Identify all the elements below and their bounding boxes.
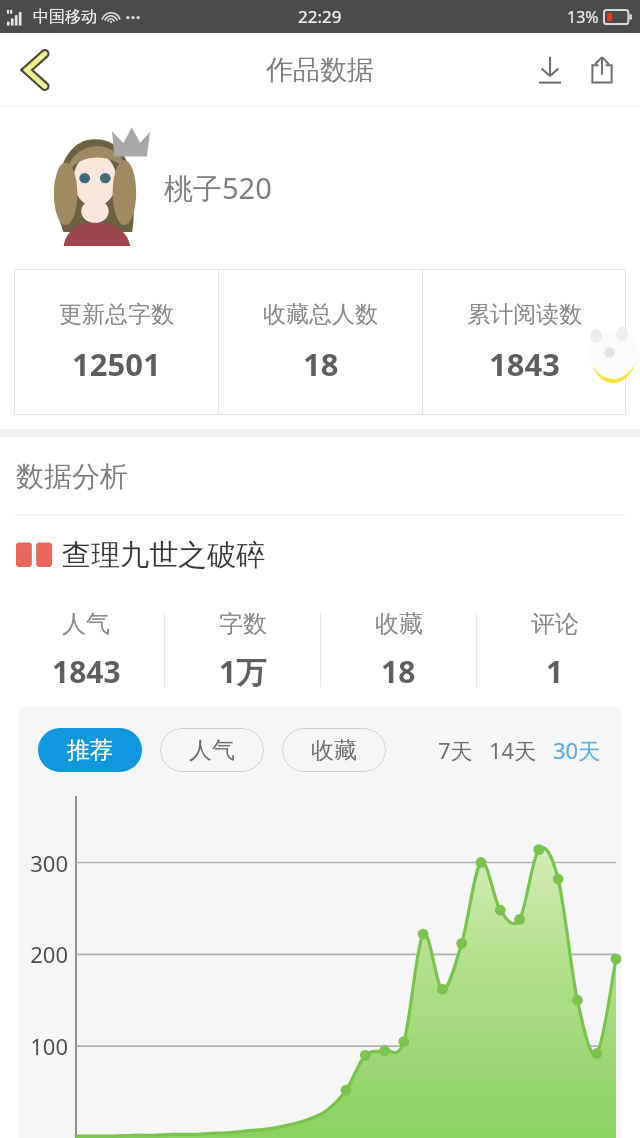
staticText: 数据分析 — [16, 459, 128, 494]
staticText: 1843 — [52, 651, 121, 692]
button[interactable]: 30天 — [550, 729, 604, 771]
button[interactable]: 7天 — [435, 729, 476, 771]
staticText: 200 — [20, 939, 68, 969]
staticText: 人气 — [62, 609, 110, 639]
button[interactable]: 字数 — [165, 609, 320, 692]
button[interactable]: 收藏 — [321, 609, 476, 692]
staticText: 12501 — [72, 343, 161, 385]
staticText: 作品数据 — [266, 53, 374, 87]
button[interactable]: Download — [524, 44, 576, 96]
button[interactable]: 14天 — [486, 729, 540, 771]
staticText: 22:29 — [298, 5, 342, 28]
button[interactable]: 累计阅读数 — [423, 269, 626, 415]
staticText: 字数 — [219, 609, 267, 639]
staticText: 评论 — [531, 609, 579, 639]
staticText: 13% — [567, 6, 599, 28]
staticText: 桃子520 — [164, 168, 272, 208]
staticText: 收藏 — [311, 736, 357, 765]
button[interactable]: 桃子520 — [0, 107, 640, 269]
staticText: 7天 — [438, 735, 473, 765]
staticText: 推荐 — [67, 736, 113, 765]
staticText: 14天 — [489, 735, 537, 765]
button[interactable]: 收藏总人数 — [219, 269, 422, 415]
staticText: 人气 — [189, 736, 235, 765]
button[interactable]: Share — [576, 44, 628, 96]
staticText: 30天 — [553, 735, 601, 765]
button[interactable]: 人气 — [160, 728, 264, 772]
staticText: 累计阅读数 — [467, 300, 582, 329]
staticText: 1843 — [489, 343, 560, 385]
staticText: 100 — [20, 1031, 68, 1061]
button[interactable]: Back — [6, 40, 66, 100]
button[interactable]: 收藏 — [282, 728, 386, 772]
staticText: 更新总字数 — [59, 300, 174, 329]
staticText: 300 — [20, 848, 68, 878]
button[interactable]: 更新总字数 — [14, 269, 218, 415]
staticText: 查理九世之破碎 — [62, 537, 265, 574]
button[interactable]: 查理九世之破碎 — [0, 516, 640, 594]
staticText: 中国移动 — [33, 7, 97, 27]
staticText: 18 — [381, 651, 416, 692]
staticText: 收藏 — [375, 609, 423, 639]
button[interactable]: 人气 — [8, 609, 164, 692]
staticText: 收藏总人数 — [263, 300, 378, 329]
button[interactable]: 推荐 — [38, 728, 142, 772]
staticText: 18 — [303, 343, 339, 385]
button[interactable]: 评论 — [477, 609, 632, 692]
staticText: 1万 — [219, 651, 267, 692]
staticText: 1 — [546, 651, 564, 692]
